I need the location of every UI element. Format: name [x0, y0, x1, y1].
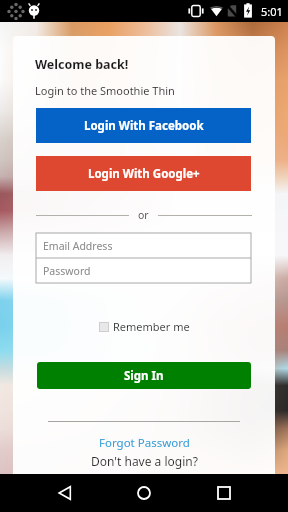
button[interactable]: Don't have a login?: [13, 453, 275, 469]
button[interactable]: Recent apps: [209, 478, 239, 508]
button[interactable]: Login With Facebook: [36, 108, 251, 143]
staticText: Sign In: [124, 368, 164, 384]
button[interactable]: Login With Google+: [36, 156, 251, 191]
button[interactable]: Back: [50, 478, 80, 508]
button[interactable]: Forgot Password: [13, 435, 275, 451]
staticText: Forgot Password: [99, 435, 190, 451]
button[interactable]: Email Address: [36, 233, 251, 258]
button[interactable]: Home: [129, 478, 159, 508]
staticText: Don't have a login?: [91, 453, 198, 469]
staticText: or: [138, 208, 149, 222]
staticText: Login With Google+: [88, 166, 200, 182]
button[interactable]: Remember me: [99, 319, 190, 334]
staticText: Login With Facebook: [84, 118, 204, 134]
staticText: Remember me: [113, 319, 190, 334]
button[interactable]: Password: [36, 258, 251, 283]
staticText: Email Address: [43, 239, 113, 253]
staticText: Password: [43, 264, 91, 278]
staticText: Welcome back!: [35, 56, 129, 73]
staticText: Login to the Smoothie Thin: [35, 83, 175, 98]
staticText: 5:01: [261, 4, 283, 19]
button[interactable]: Sign In: [37, 362, 251, 389]
